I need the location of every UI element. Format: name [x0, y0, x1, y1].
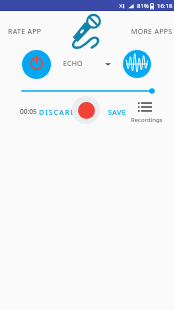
- button[interactable]: DISCARD: [38, 107, 78, 119]
- staticText: RATE APP: [8, 27, 42, 37]
- button[interactable]: Audio waveform: [123, 50, 151, 78]
- button[interactable]: ECHO: [61, 55, 113, 73]
- staticText: MORE APPS: [131, 27, 173, 37]
- button[interactable]: Microphone: [70, 12, 106, 48]
- staticText: 00:05: [20, 107, 37, 116]
- staticText: 16:18: [157, 2, 173, 10]
- button[interactable]: Record: [72, 96, 100, 124]
- staticText: SAVE: [108, 108, 126, 118]
- button[interactable]: MORE APPS: [127, 23, 174, 41]
- staticText: Recordings: [131, 116, 163, 124]
- button[interactable]: Power: [22, 50, 51, 79]
- staticText: ECHO: [63, 59, 83, 69]
- button[interactable]: RATE APP: [4, 23, 46, 41]
- button[interactable]: SAVE: [107, 107, 127, 119]
- button[interactable]: 00:05: [19, 106, 38, 117]
- staticText: DISCARD: [39, 108, 77, 118]
- staticText: 81%: [137, 2, 149, 10]
- button[interactable]: Recordings: [128, 101, 166, 124]
